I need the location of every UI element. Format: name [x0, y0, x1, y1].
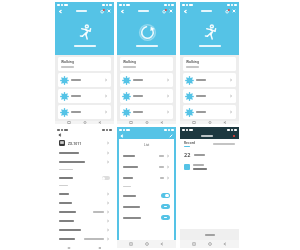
- button[interactable]: [161, 193, 170, 198]
- staticText: Walking: [61, 60, 74, 64]
- button[interactable]: [120, 73, 173, 87]
- button[interactable]: [55, 148, 114, 157]
- button[interactable]: [180, 229, 239, 240]
- staticText: Record: [184, 141, 196, 145]
- button[interactable]: [183, 105, 236, 119]
- button[interactable]: Back: [58, 9, 63, 14]
- button[interactable]: Back: [160, 242, 164, 246]
- button[interactable]: [120, 105, 173, 119]
- button[interactable]: [183, 89, 236, 103]
- staticText: 22: [184, 151, 191, 158]
- button[interactable]: Recents: [129, 121, 133, 124]
- button[interactable]: [55, 216, 114, 225]
- button[interactable]: [55, 189, 114, 198]
- button[interactable]: [58, 73, 111, 87]
- staticText: ZX-1011: [68, 141, 82, 146]
- staticText: List: [144, 143, 150, 147]
- button[interactable]: Notifications: [100, 9, 105, 14]
- button[interactable]: Recents: [67, 121, 71, 124]
- button[interactable]: [55, 173, 114, 182]
- button[interactable]: Notifications: [162, 9, 167, 14]
- staticText: Walking: [123, 60, 136, 64]
- button[interactable]: Close: [232, 9, 236, 13]
- staticText: Walking: [186, 60, 199, 64]
- button[interactable]: Recents: [192, 121, 196, 124]
- button[interactable]: More: [106, 141, 110, 145]
- button[interactable]: [55, 234, 114, 243]
- button[interactable]: 22: [180, 149, 239, 160]
- button[interactable]: [55, 157, 114, 166]
- button[interactable]: [55, 225, 114, 234]
- button[interactable]: Home: [208, 121, 212, 124]
- button[interactable]: Back: [98, 121, 102, 124]
- button[interactable]: Back: [223, 242, 227, 246]
- button[interactable]: Alerts: [232, 134, 236, 138]
- button[interactable]: [55, 198, 114, 207]
- button[interactable]: Walking: [120, 57, 173, 71]
- button[interactable]: Close: [107, 9, 111, 13]
- button[interactable]: Back: [58, 133, 62, 137]
- button[interactable]: [119, 150, 174, 161]
- button[interactable]: Close: [169, 9, 173, 13]
- button[interactable]: Back: [183, 9, 188, 14]
- button[interactable]: Walking: [58, 57, 111, 71]
- button[interactable]: [119, 201, 174, 212]
- button[interactable]: Recents: [192, 242, 196, 246]
- button[interactable]: Home: [83, 121, 87, 124]
- button[interactable]: [119, 190, 174, 201]
- button[interactable]: [58, 105, 111, 119]
- button[interactable]: Home: [208, 242, 212, 246]
- button[interactable]: [119, 161, 174, 172]
- button[interactable]: Notifications: [225, 9, 230, 14]
- button[interactable]: Recents: [129, 242, 133, 246]
- button[interactable]: Back: [120, 134, 124, 138]
- button[interactable]: Home: [145, 242, 149, 246]
- button[interactable]: [58, 89, 111, 103]
- button[interactable]: Home: [145, 121, 149, 124]
- button[interactable]: [161, 204, 170, 209]
- button[interactable]: [119, 172, 174, 183]
- button[interactable]: Walking: [183, 57, 236, 71]
- button[interactable]: [119, 212, 174, 223]
- button[interactable]: [180, 160, 239, 174]
- button[interactable]: [102, 176, 110, 180]
- button[interactable]: [120, 89, 173, 103]
- button[interactable]: Back: [223, 121, 227, 124]
- button[interactable]: Back: [160, 121, 164, 124]
- button[interactable]: [183, 73, 236, 87]
- button[interactable]: Back: [120, 9, 125, 14]
- button[interactable]: [55, 207, 114, 216]
- button[interactable]: Edit: [169, 134, 173, 138]
- button[interactable]: [161, 215, 170, 220]
